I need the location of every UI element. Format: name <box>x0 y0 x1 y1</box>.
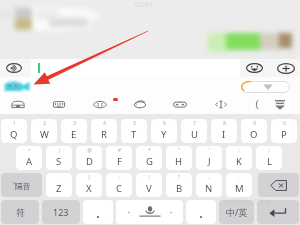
button[interactable]: Punctuation <box>83 200 113 224</box>
button[interactable]: * <box>136 146 162 170</box>
staticText: 8 <box>223 120 226 126</box>
staticText: I <box>222 128 226 141</box>
button[interactable]: 符 <box>1 200 39 224</box>
staticText: S <box>56 155 62 168</box>
button[interactable]: 1 <box>1 119 27 143</box>
button[interactable]: 3 <box>61 119 87 143</box>
button[interactable]: ^ <box>16 146 42 170</box>
staticText: B <box>176 182 183 195</box>
button[interactable]: '隔音 <box>1 173 42 197</box>
staticText: A <box>26 155 33 168</box>
staticText: 0 <box>283 120 286 126</box>
staticText: X <box>86 182 92 195</box>
button[interactable]: Emoticons <box>90 96 110 113</box>
staticText: N <box>205 182 213 195</box>
button[interactable]: Sticker <box>4 80 30 93</box>
staticText: T <box>131 128 137 141</box>
button[interactable]: # <box>106 146 132 170</box>
staticText: H <box>175 155 183 168</box>
staticText: 1 <box>13 120 16 126</box>
button[interactable]: ' <box>196 146 222 170</box>
staticText: M <box>235 182 244 195</box>
staticText: 5 <box>133 120 136 126</box>
button[interactable]: Enter <box>257 200 299 224</box>
button[interactable]: | <box>46 146 72 170</box>
staticText: ^ <box>28 147 31 153</box>
staticText: 123 <box>53 206 69 218</box>
staticText: 4 <box>103 120 106 126</box>
button[interactable]: Space <box>116 200 183 224</box>
button[interactable]: 5 <box>121 119 147 143</box>
staticText: · <box>58 174 60 180</box>
button[interactable]: 7 <box>181 119 207 143</box>
button[interactable]: More options <box>276 59 295 77</box>
staticText: W <box>40 128 49 141</box>
staticText: Y <box>161 128 167 141</box>
staticText: C <box>116 182 123 195</box>
staticText: ' <box>208 147 210 153</box>
staticText: 7 <box>193 120 196 126</box>
button[interactable]: 中/英 <box>219 200 254 224</box>
staticText: ~ <box>118 174 121 180</box>
staticText: " <box>178 147 180 153</box>
staticText: ) <box>88 174 90 180</box>
staticText: 6 <box>163 120 166 126</box>
staticText: 中/英 <box>226 206 248 218</box>
button[interactable]: · <box>46 173 72 197</box>
staticText: O <box>250 128 258 141</box>
button[interactable]: Voice input <box>3 59 24 77</box>
staticText: F <box>117 155 122 168</box>
button[interactable]: 0 <box>271 119 297 143</box>
staticText: , <box>208 174 210 180</box>
button[interactable]: ; <box>256 146 282 170</box>
staticText: * <box>148 147 151 153</box>
button[interactable]: : <box>226 146 252 170</box>
button[interactable]: Themes <box>170 96 190 113</box>
staticText: L <box>267 155 272 168</box>
button[interactable]: ! <box>136 173 162 197</box>
button[interactable]: Punctuation <box>186 200 216 224</box>
button[interactable]: @ <box>76 146 102 170</box>
button[interactable]: ) <box>76 173 102 197</box>
button[interactable]: 123 <box>42 200 80 224</box>
button[interactable]: Backspace <box>258 173 299 197</box>
button[interactable]: Cursor <box>211 96 231 113</box>
staticText: | <box>58 147 61 153</box>
staticText: 9 <box>253 120 256 126</box>
staticText: P <box>281 128 287 141</box>
staticText: Q <box>10 128 18 141</box>
button[interactable]: Voice pack <box>8 96 28 113</box>
staticText: Z <box>56 182 62 195</box>
staticText: . <box>238 174 240 180</box>
staticText: 09:41 <box>135 0 153 10</box>
staticText: ? <box>178 174 180 180</box>
staticText: K <box>236 155 242 168</box>
button[interactable]: Gem store <box>241 81 290 93</box>
button[interactable]: 6 <box>151 119 177 143</box>
staticText: 搜狗输入法官网 <box>223 197 272 206</box>
button[interactable]: Keyboard <box>49 96 69 113</box>
button[interactable]: Emoji <box>245 59 264 77</box>
button[interactable]: 2 <box>31 119 57 143</box>
staticText: ! <box>148 174 150 180</box>
button[interactable]: ~ <box>106 173 132 197</box>
staticText: ; <box>268 147 270 153</box>
button[interactable]: 4 <box>91 119 117 143</box>
button[interactable]: Clipboard <box>248 96 268 113</box>
button[interactable] <box>31 59 240 77</box>
button[interactable]: " <box>166 146 192 170</box>
button[interactable]: . <box>226 173 252 197</box>
button[interactable]: Hide keyboard <box>270 96 290 113</box>
staticText: @ <box>87 147 92 153</box>
staticText: 2 <box>43 120 46 126</box>
staticText: # <box>118 147 121 153</box>
staticText: G <box>146 155 153 168</box>
button[interactable]: , <box>196 173 222 197</box>
staticText: '隔音 <box>13 180 31 191</box>
button[interactable]: ? <box>166 173 192 197</box>
staticText: E <box>71 128 77 141</box>
button[interactable]: 8 <box>211 119 237 143</box>
button[interactable]: 9 <box>241 119 267 143</box>
staticText: : <box>238 147 240 153</box>
button[interactable]: Handwriting <box>130 96 150 113</box>
